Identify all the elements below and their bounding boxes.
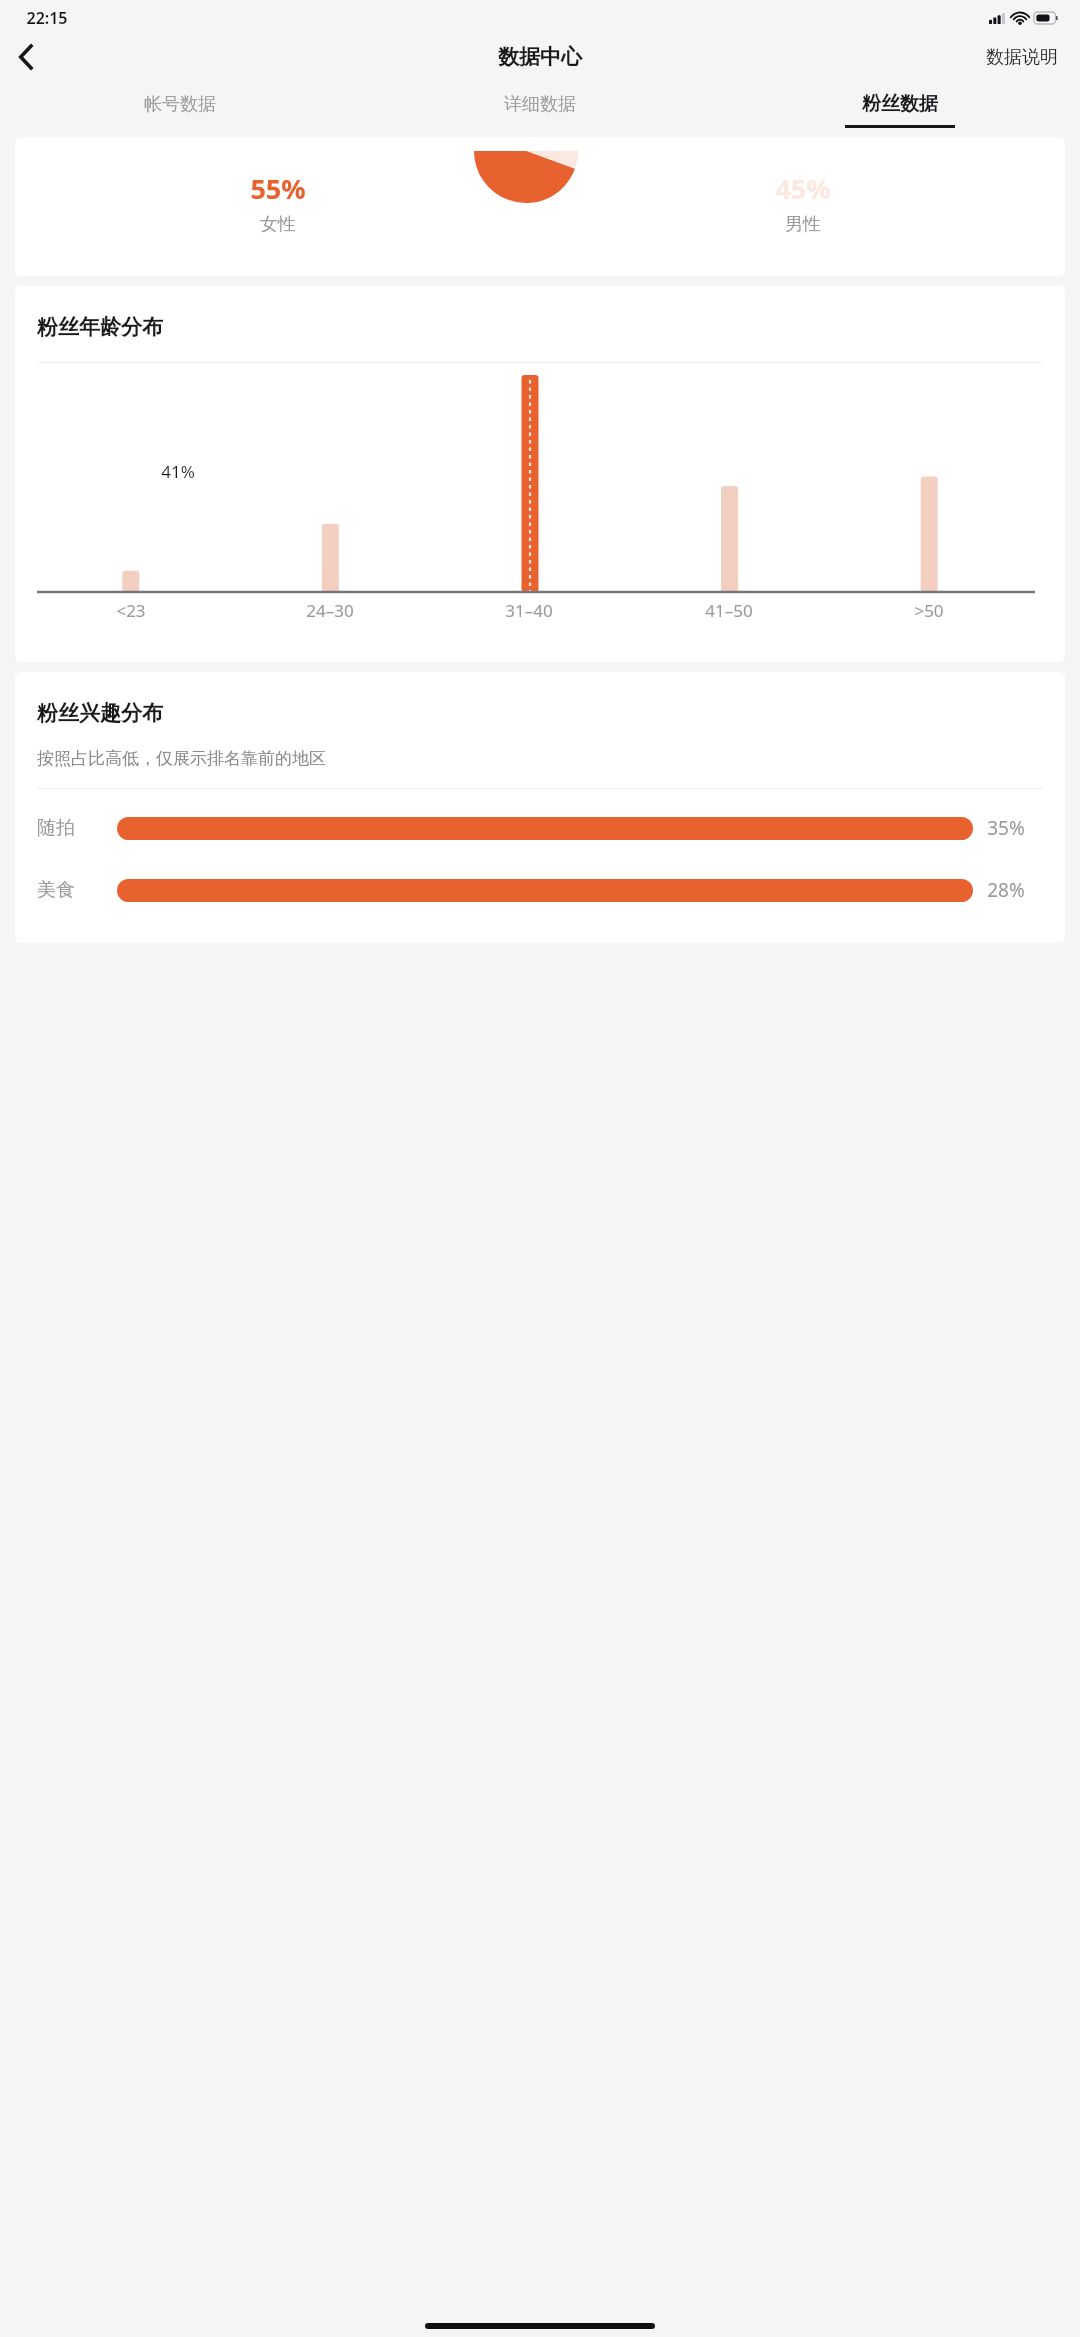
staticText: 数据说明 (986, 46, 1058, 69)
staticText: 随拍 (37, 816, 75, 840)
staticText: 粉丝年龄分布 (37, 314, 163, 340)
staticText: 41–50 (705, 599, 753, 622)
staticText: 24–30 (306, 599, 354, 622)
staticText: 22:15 (26, 7, 68, 29)
staticText: >50 (914, 599, 944, 622)
staticText: 粉丝兴趣分布 (37, 700, 163, 726)
staticText: 31–40 (505, 599, 553, 622)
staticText: 35% (987, 815, 1025, 841)
button[interactable]: 帐号数据 (0, 83, 360, 137)
staticText: 28% (987, 877, 1025, 903)
staticText: 粉丝数据 (862, 92, 938, 116)
staticText: 41% (161, 460, 195, 483)
staticText: 数据中心 (498, 44, 582, 70)
staticText: <23 (116, 599, 146, 622)
staticText: 帐号数据 (144, 93, 216, 116)
staticText: 美食 (37, 878, 75, 902)
staticText: 按照占比高低，仅展示排名靠前的地区 (37, 748, 326, 769)
staticText: 55% (250, 170, 306, 207)
button[interactable]: 详细数据 (360, 83, 720, 137)
button[interactable]: 数据说明 (964, 34, 1080, 81)
button[interactable]: Back (0, 31, 52, 83)
staticText: 男性 (785, 213, 821, 236)
staticText: 女性 (260, 213, 296, 236)
staticText: 详细数据 (504, 93, 576, 116)
staticText: 45% (775, 170, 831, 207)
button[interactable]: 粉丝数据 (720, 83, 1080, 137)
